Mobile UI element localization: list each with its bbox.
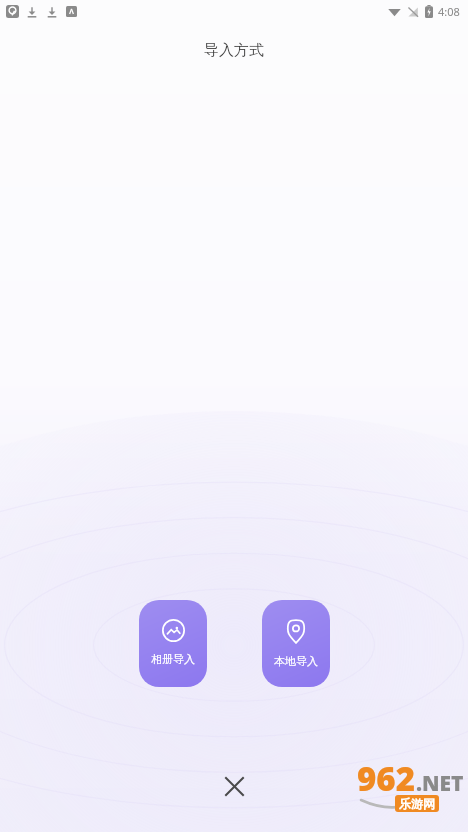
button[interactable]: 本地导入 [262,600,330,687]
button[interactable]: 相册导入 [139,600,207,687]
staticText: 导入方式 [204,41,264,60]
staticText: 4:08 [438,4,460,19]
staticText: 本地导入 [274,654,318,668]
button[interactable]: 关闭 [218,770,250,802]
staticText: 乐游网 [399,796,435,811]
staticText: 相册导入 [151,652,195,666]
staticText: 962 [357,756,416,801]
staticText: .NET [416,769,464,798]
